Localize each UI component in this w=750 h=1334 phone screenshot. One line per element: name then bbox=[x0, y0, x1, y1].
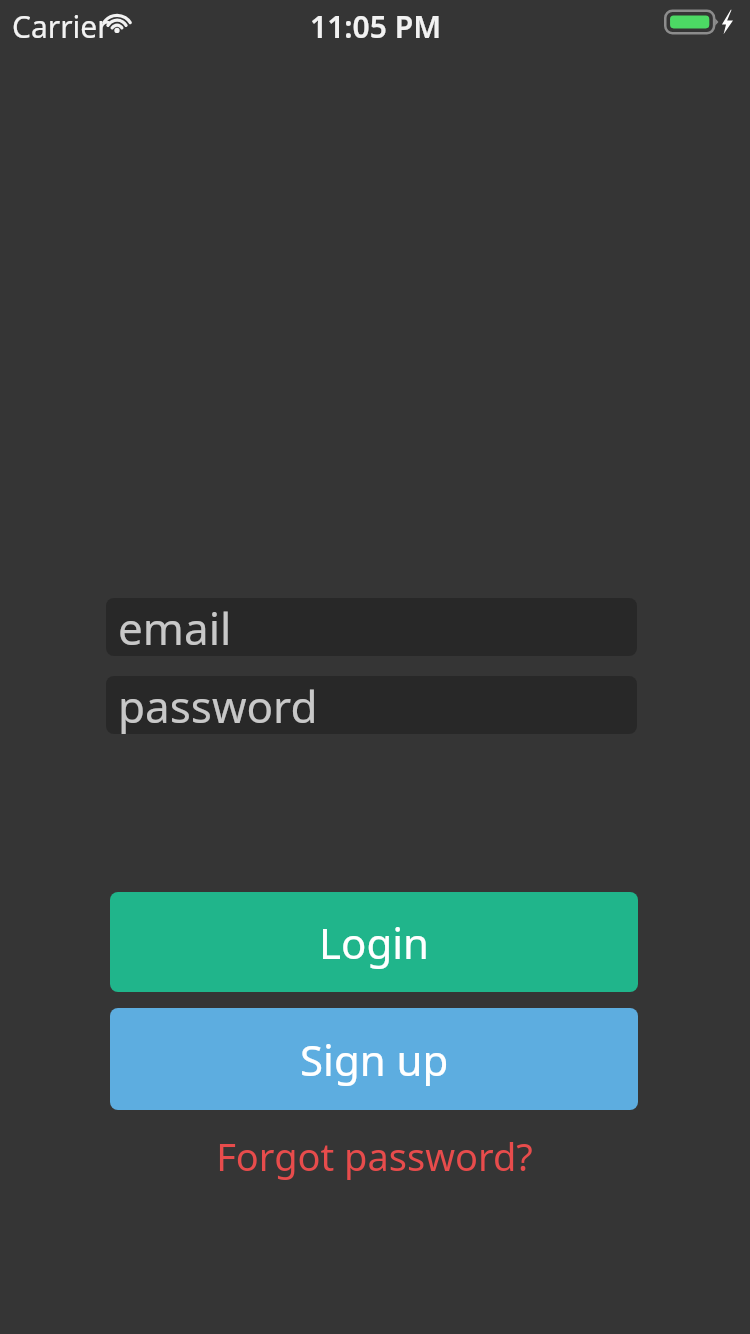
button[interactable]: password bbox=[106, 676, 637, 734]
staticText: Forgot password? bbox=[216, 1130, 533, 1182]
staticText: 11:05 PM bbox=[310, 6, 442, 47]
button[interactable]: Login bbox=[110, 892, 638, 992]
staticText: Sign up bbox=[300, 1031, 449, 1088]
staticText: password bbox=[118, 676, 318, 734]
staticText: Carrier bbox=[12, 6, 110, 47]
button[interactable]: email bbox=[106, 598, 637, 656]
staticText: Login bbox=[319, 914, 430, 971]
staticText: email bbox=[118, 598, 232, 656]
button[interactable]: Sign up bbox=[110, 1008, 638, 1110]
button[interactable]: Forgot password? bbox=[110, 1128, 638, 1184]
